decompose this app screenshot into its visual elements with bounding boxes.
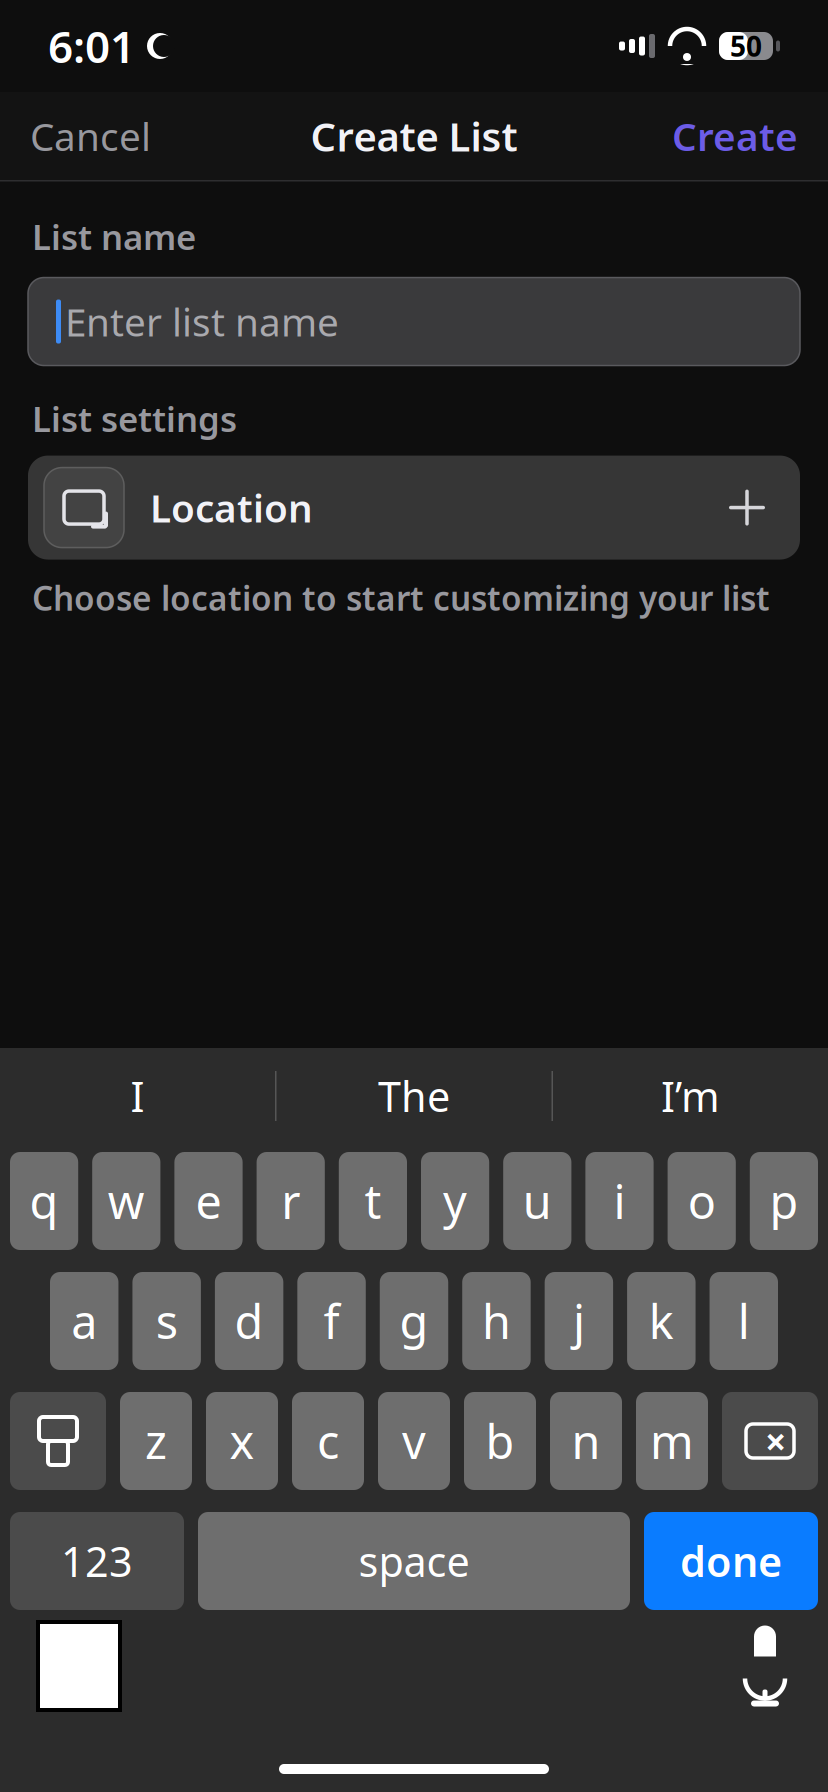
staticText: h: [482, 1290, 511, 1352]
button[interactable]: Emoji keyboard: [36, 1620, 122, 1712]
staticText: r: [281, 1170, 300, 1232]
button[interactable]: h: [462, 1272, 531, 1370]
button[interactable]: z: [120, 1392, 192, 1490]
staticText: w: [108, 1170, 145, 1232]
staticText: z: [145, 1410, 167, 1472]
staticText: y: [443, 1170, 467, 1232]
staticText: done: [680, 1534, 782, 1588]
staticText: d: [235, 1290, 264, 1352]
staticText: v: [402, 1410, 426, 1472]
staticText: i: [613, 1170, 625, 1232]
staticText: ×: [765, 1416, 786, 1466]
staticText: m: [650, 1410, 694, 1472]
button[interactable]: Cancel: [20, 96, 161, 176]
staticText: Create List: [310, 109, 517, 162]
staticText: e: [195, 1170, 221, 1232]
button[interactable]: o: [668, 1152, 736, 1250]
staticText: List name: [32, 213, 196, 259]
button[interactable]: Shift: [10, 1392, 106, 1490]
button[interactable]: e: [174, 1152, 243, 1250]
button[interactable]: d: [215, 1272, 283, 1370]
staticText: a: [71, 1290, 97, 1352]
staticText: o: [688, 1170, 716, 1232]
staticText: I: [130, 1069, 144, 1123]
button[interactable]: l: [710, 1272, 778, 1370]
staticText: u: [523, 1170, 552, 1232]
button[interactable]: p: [750, 1152, 818, 1250]
staticText: c: [317, 1410, 339, 1472]
button[interactable]: done: [644, 1512, 818, 1610]
button[interactable]: c: [292, 1392, 364, 1490]
button[interactable]: x: [206, 1392, 278, 1490]
staticText: Create: [672, 110, 798, 162]
staticText: k: [649, 1290, 674, 1352]
button[interactable]: Location: [28, 456, 800, 560]
staticText: g: [399, 1290, 428, 1352]
staticText: q: [30, 1170, 59, 1232]
button[interactable]: r: [257, 1152, 325, 1250]
button[interactable]: Create: [662, 96, 808, 176]
button[interactable]: s: [132, 1272, 201, 1370]
staticText: Choose location to start customizing you…: [32, 576, 770, 620]
staticText: 50: [730, 27, 762, 65]
button[interactable]: I’m: [553, 1048, 828, 1144]
staticText: Cancel: [30, 110, 151, 162]
button[interactable]: g: [380, 1272, 448, 1370]
button[interactable]: q: [10, 1152, 78, 1250]
button[interactable]: Dictate: [742, 1622, 828, 1710]
staticText: x: [229, 1410, 254, 1472]
button[interactable]: y: [421, 1152, 489, 1250]
button[interactable]: f: [297, 1272, 366, 1370]
button[interactable]: Delete: [722, 1392, 818, 1490]
button[interactable]: u: [503, 1152, 571, 1250]
staticText: s: [156, 1290, 178, 1352]
staticText: n: [571, 1410, 600, 1472]
staticText: l: [738, 1290, 750, 1352]
button[interactable]: i: [585, 1152, 654, 1250]
staticText: p: [769, 1170, 798, 1232]
button[interactable]: w: [92, 1152, 160, 1250]
button[interactable]: j: [545, 1272, 613, 1370]
button[interactable]: v: [378, 1392, 450, 1490]
button[interactable]: I: [0, 1048, 275, 1144]
button[interactable]: space: [198, 1512, 630, 1610]
button[interactable]: a: [50, 1272, 118, 1370]
staticText: j: [573, 1290, 585, 1352]
staticText: Location: [150, 482, 313, 533]
button[interactable]: n: [550, 1392, 622, 1490]
staticText: List settings: [32, 395, 237, 441]
button[interactable]: k: [627, 1272, 695, 1370]
staticText: The: [378, 1069, 450, 1123]
button[interactable]: b: [464, 1392, 536, 1490]
button[interactable]: The: [276, 1048, 551, 1144]
staticText: t: [364, 1170, 381, 1232]
button[interactable]: t: [339, 1152, 407, 1250]
staticText: Enter list name: [65, 296, 339, 347]
button[interactable]: 123: [10, 1512, 184, 1610]
staticText: 123: [61, 1534, 133, 1588]
staticText: b: [485, 1410, 514, 1472]
staticText: I’m: [661, 1069, 720, 1123]
staticText: 6:01: [48, 17, 135, 75]
staticText: f: [324, 1290, 340, 1352]
staticText: space: [358, 1534, 469, 1588]
button[interactable]: m: [636, 1392, 708, 1490]
